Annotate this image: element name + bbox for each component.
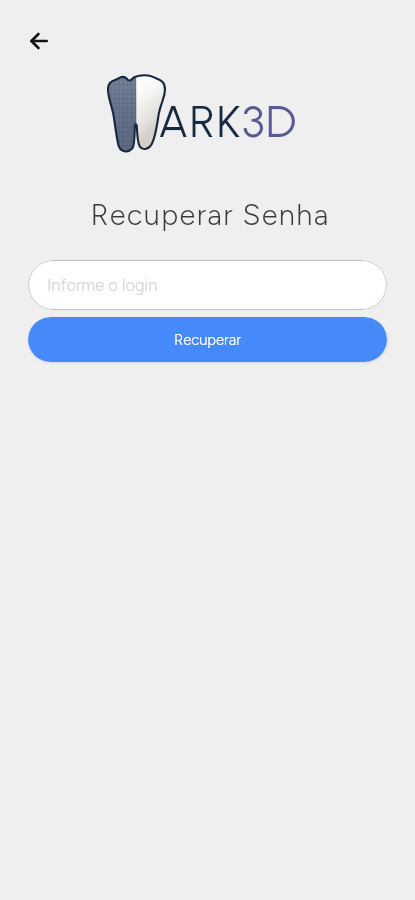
staticText: Recuperar Senha [90,197,330,232]
button[interactable]: Back [20,22,57,59]
button[interactable]: Recuperar [28,317,387,362]
staticText: ARK3D [158,94,298,148]
button[interactable]: Informe o login [28,260,387,310]
staticText: Informe o login [47,275,158,295]
staticText: Recuperar [174,331,242,349]
